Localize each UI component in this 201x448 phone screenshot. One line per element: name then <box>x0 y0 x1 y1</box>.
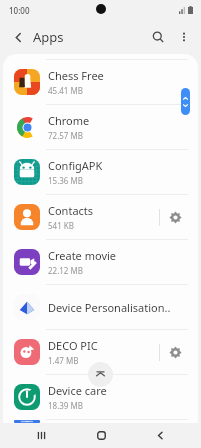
staticText: Apps <box>33 28 64 46</box>
staticText: 22.12 MB <box>48 265 83 276</box>
button[interactable]: Search <box>145 24 171 50</box>
button[interactable]: Create movie <box>3 240 198 284</box>
button[interactable]: Chrome <box>3 105 198 149</box>
staticText: 72.57 MB <box>48 130 83 141</box>
staticText: Create movie <box>48 248 117 263</box>
staticText: ConfigAPK <box>48 158 103 173</box>
button[interactable]: DECO PIC <box>3 330 198 374</box>
staticText: 15.36 MB <box>48 175 83 186</box>
staticText: Device Personalisation.. <box>48 300 171 315</box>
staticText: Chess Free <box>48 68 104 83</box>
staticText: Contacts <box>48 203 94 218</box>
staticText: DECO PIC <box>48 338 98 353</box>
button[interactable]: Contacts <box>3 195 198 239</box>
staticText: Device care <box>48 383 107 398</box>
button[interactable]: Scroll to top <box>88 362 113 387</box>
button[interactable]: Scroll <box>181 88 190 115</box>
button[interactable]: Device Personalisation.. <box>3 285 198 329</box>
button[interactable]: Back <box>142 423 178 448</box>
button[interactable]: Recents <box>23 423 59 448</box>
button[interactable]: Chess Free <box>3 60 198 104</box>
button[interactable]: ConfigAPK <box>3 150 198 194</box>
button[interactable]: Home <box>83 423 119 448</box>
staticText: 1.47 MB <box>48 355 79 366</box>
button[interactable]: App settings <box>160 202 190 232</box>
button[interactable]: Device care <box>3 375 198 419</box>
button[interactable]: Device Health Services <box>3 420 198 423</box>
button[interactable]: App settings <box>160 337 190 367</box>
staticText: Chrome <box>48 113 90 128</box>
button[interactable]: More options <box>171 24 197 50</box>
staticText: 10:00 <box>9 5 30 16</box>
button[interactable]: Back <box>6 25 30 49</box>
staticText: 541 KB <box>48 220 74 231</box>
staticText: 45.41 MB <box>48 85 83 96</box>
staticText: 18.39 MB <box>48 400 83 411</box>
